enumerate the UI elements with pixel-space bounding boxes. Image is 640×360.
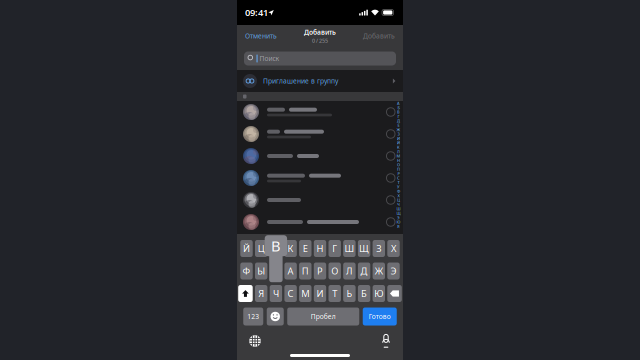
- button[interactable]: Ч: [270, 285, 282, 302]
- staticText: Ф: [242, 265, 250, 277]
- staticText: Добавить: [304, 28, 336, 37]
- button[interactable]: А: [284, 262, 297, 279]
- button[interactable]: М: [299, 285, 311, 302]
- button[interactable]: Отменить: [243, 28, 279, 44]
- button[interactable]: Удалить: [387, 285, 402, 302]
- staticText: Щ: [396, 210, 400, 216]
- staticText: Л: [397, 149, 400, 154]
- staticText: И: [397, 136, 400, 141]
- button[interactable]: Н: [314, 240, 326, 257]
- staticText: Й: [243, 242, 250, 255]
- button[interactable]: 123: [243, 307, 263, 325]
- staticText: Н: [397, 158, 400, 163]
- button[interactable]: Ц: [255, 240, 267, 257]
- button[interactable]: Добавить: [361, 28, 397, 44]
- button[interactable]: Щ: [358, 240, 370, 257]
- staticText: Б: [397, 105, 399, 110]
- button[interactable]: Ю: [373, 285, 385, 302]
- staticText: С: [288, 287, 294, 300]
- staticText: Л: [346, 265, 353, 277]
- button[interactable]: Диктовка: [376, 333, 396, 349]
- button[interactable]: З: [373, 240, 385, 257]
- button[interactable]: Й: [240, 240, 253, 257]
- staticText: Ю: [374, 287, 383, 300]
- staticText: Ч: [397, 202, 400, 207]
- button[interactable]: В: [270, 240, 282, 257]
- staticText: И: [316, 287, 323, 300]
- staticText: З: [397, 131, 399, 137]
- button[interactable]: П: [299, 262, 311, 279]
- button[interactable]: Пробел: [287, 307, 359, 325]
- staticText: Р: [397, 171, 399, 176]
- button[interactable]: Ь: [343, 285, 356, 302]
- staticText: 123: [247, 312, 259, 321]
- staticText: Приглашение в группу: [263, 77, 338, 85]
- button[interactable]: Е: [299, 240, 311, 257]
- button[interactable]: Ф: [240, 262, 253, 279]
- staticText: Пробел: [311, 312, 336, 321]
- button[interactable]: [237, 167, 403, 189]
- staticText: Э: [397, 215, 400, 220]
- staticText: Д: [361, 265, 368, 277]
- staticText: Т: [332, 287, 337, 300]
- staticText: Ж: [396, 127, 400, 132]
- staticText: А: [288, 265, 294, 277]
- staticText: Ч: [273, 287, 279, 300]
- button[interactable]: Б: [358, 285, 370, 302]
- button[interactable]: Т: [328, 285, 341, 302]
- staticText: О: [397, 162, 400, 167]
- button[interactable]: О: [328, 262, 341, 279]
- button[interactable]: Ж: [373, 262, 385, 279]
- staticText: М: [301, 287, 309, 300]
- staticText: З: [376, 242, 381, 255]
- button[interactable]: Р: [314, 262, 326, 279]
- staticText: Э: [390, 265, 396, 277]
- staticText: Поиск: [260, 54, 280, 63]
- button[interactable]: Готово: [363, 307, 397, 325]
- staticText: О: [331, 265, 338, 277]
- staticText: Я: [397, 224, 400, 229]
- button[interactable]: Ы: [255, 262, 267, 279]
- button[interactable]: Д: [358, 262, 370, 279]
- button[interactable]: К: [284, 240, 297, 257]
- button[interactable]: [237, 101, 403, 123]
- button[interactable]: Shift: [238, 285, 253, 302]
- button[interactable]: Поиск: [244, 51, 396, 65]
- staticText: Щ: [359, 242, 369, 255]
- staticText: Ц: [258, 242, 265, 255]
- button[interactable]: Г: [328, 240, 341, 257]
- staticText: Ш: [344, 242, 354, 255]
- staticText: К: [288, 242, 294, 255]
- staticText: У: [397, 184, 400, 189]
- button[interactable]: [237, 123, 403, 145]
- staticText: Х: [397, 193, 399, 198]
- button[interactable]: Эмодзи: [267, 307, 284, 325]
- button[interactable]: С: [284, 285, 297, 302]
- button[interactable]: Ш: [343, 240, 356, 257]
- button[interactable]: Л: [343, 262, 356, 279]
- button[interactable]: [237, 145, 403, 167]
- staticText: Е: [303, 242, 308, 255]
- staticText: Ц: [397, 197, 400, 203]
- staticText: Ж: [375, 265, 383, 277]
- staticText: В: [397, 109, 400, 115]
- staticText: Х: [391, 242, 396, 255]
- staticText: Ю: [396, 219, 400, 225]
- button[interactable]: Приглашение в группу: [237, 70, 403, 92]
- staticText: Ы: [257, 265, 265, 277]
- button[interactable]: Х: [387, 240, 400, 257]
- staticText: Е: [397, 122, 399, 128]
- staticText: Р: [317, 265, 323, 277]
- staticText: Я: [258, 287, 264, 300]
- staticText: Готово: [369, 312, 391, 321]
- staticText: П: [302, 265, 309, 277]
- button[interactable]: Я: [255, 285, 267, 302]
- staticText: Ф: [397, 188, 400, 194]
- button[interactable]: Э: [387, 262, 400, 279]
- button[interactable]: И: [314, 285, 326, 302]
- staticText: С: [397, 175, 400, 181]
- button[interactable]: [237, 189, 403, 211]
- button[interactable]: Сменить язык: [245, 333, 265, 349]
- button[interactable]: [237, 211, 403, 233]
